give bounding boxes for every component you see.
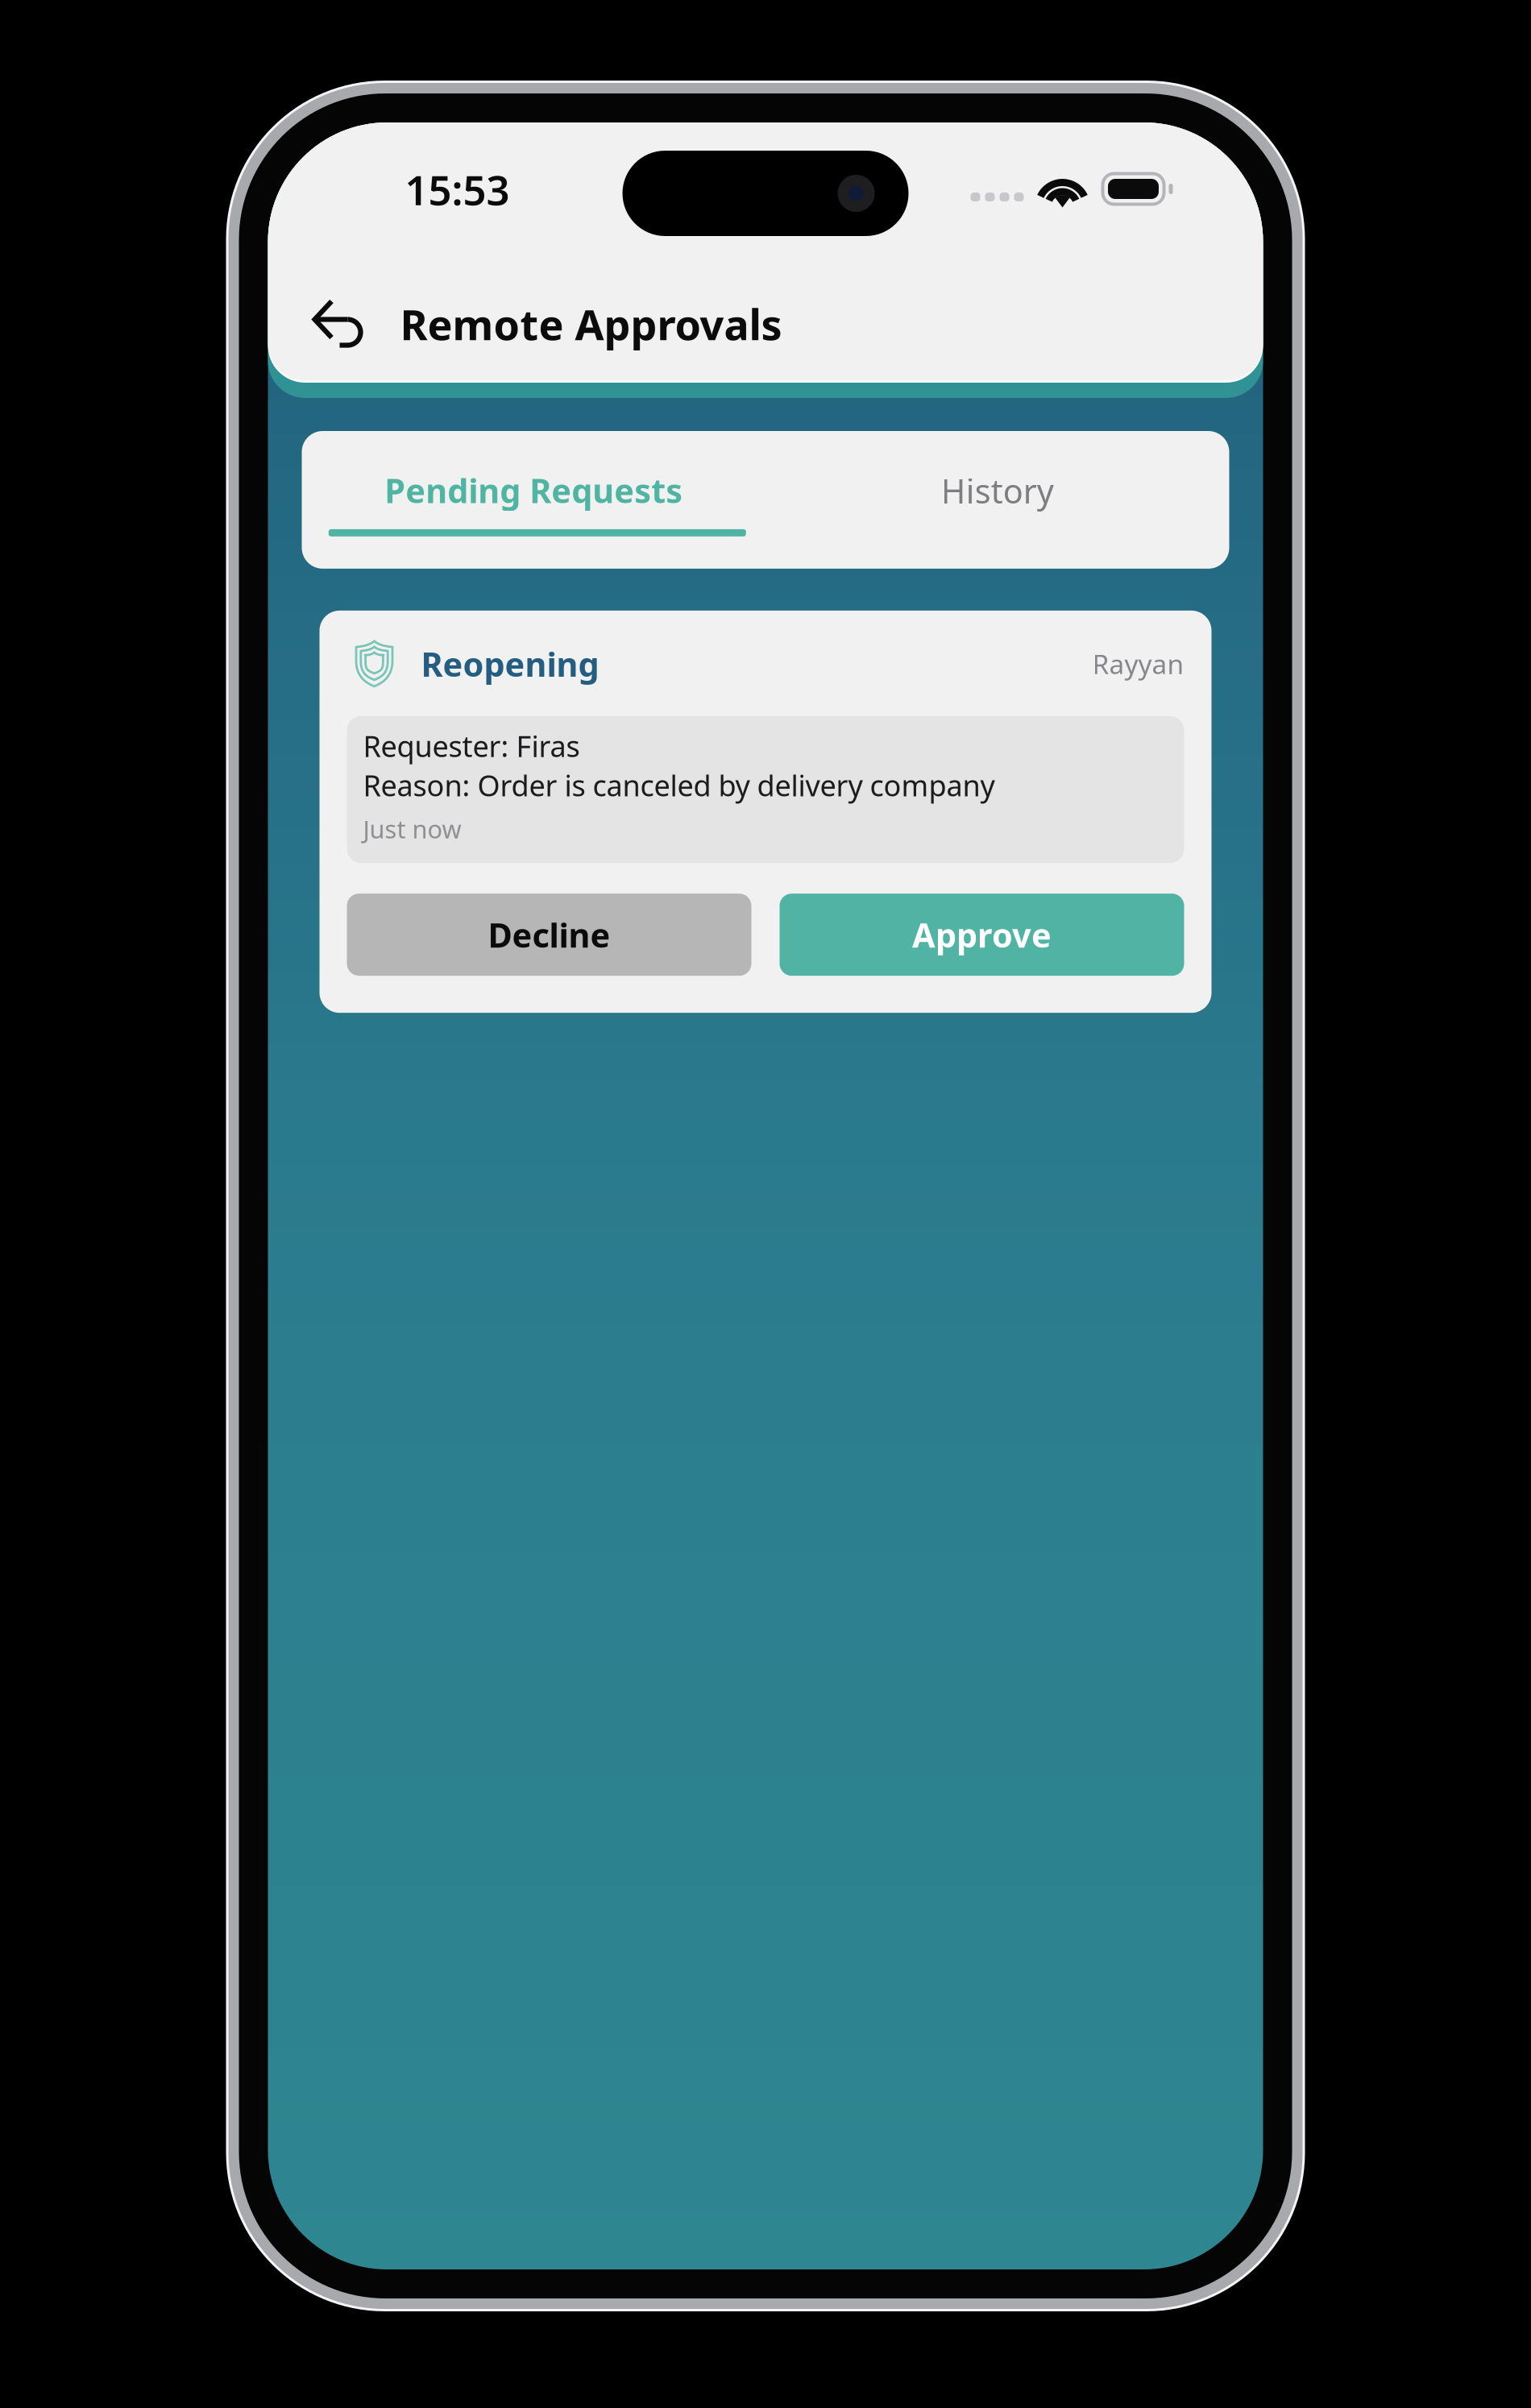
staticText: Decline — [488, 913, 610, 957]
button[interactable]: History — [765, 431, 1229, 568]
staticText: Requester: Firas — [363, 727, 580, 765]
staticText: Just now — [363, 812, 461, 845]
staticText: History — [941, 468, 1054, 513]
staticText: Remote Approvals — [400, 296, 782, 352]
staticText: Reopening — [421, 642, 599, 686]
button[interactable]: Approve — [780, 894, 1184, 976]
staticText: Reason: Order is canceled by delivery co… — [363, 766, 995, 804]
staticText: Pending Requests — [385, 468, 683, 512]
button[interactable]: Back — [292, 277, 386, 371]
staticText: Approve — [912, 913, 1052, 957]
staticText: Rayyan — [1092, 646, 1184, 682]
button[interactable]: Decline — [347, 894, 751, 976]
staticText: 15:53 — [405, 162, 510, 216]
button[interactable]: Pending Requests — [302, 431, 765, 569]
